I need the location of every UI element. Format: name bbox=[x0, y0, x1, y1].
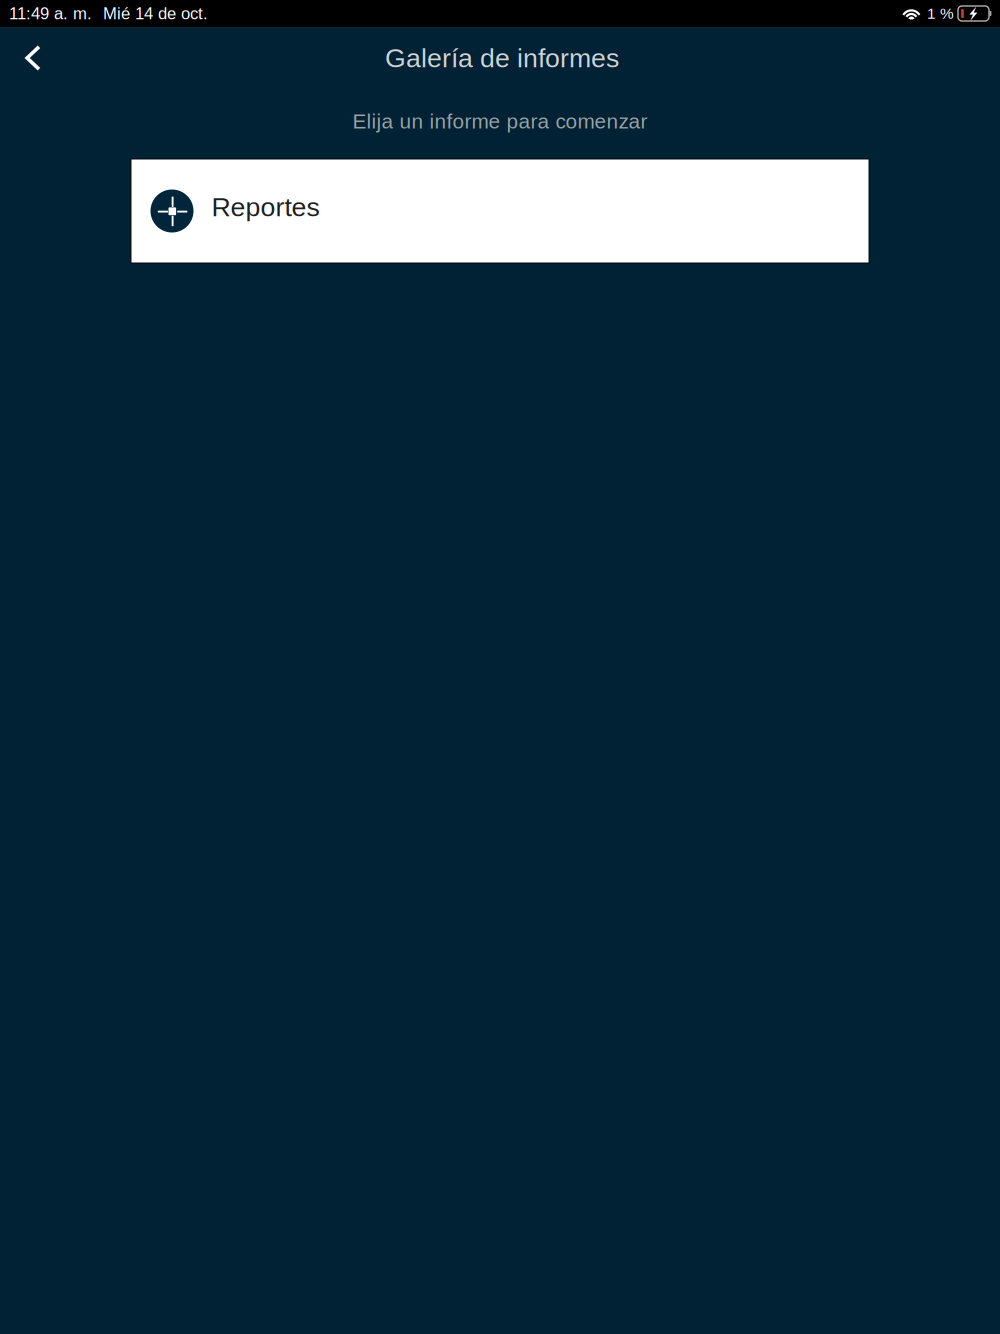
staticText: Reportes bbox=[211, 192, 319, 222]
staticText: Elija un informe para comenzar bbox=[352, 110, 647, 133]
staticText: Galería de informes bbox=[385, 43, 619, 73]
button[interactable]: Reportes bbox=[130, 158, 870, 264]
button[interactable]: Back bbox=[0, 27, 64, 87]
staticText: Mié 14 de oct. bbox=[103, 4, 208, 23]
staticText: 11:49 a. m. bbox=[9, 4, 92, 23]
staticText: 1 % bbox=[927, 5, 954, 22]
